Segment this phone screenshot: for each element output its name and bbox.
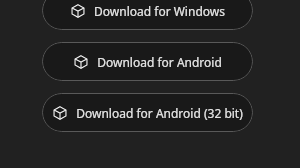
staticText: Download for Windows (94, 3, 225, 19)
button[interactable]: Download for Windows (42, 0, 253, 30)
button[interactable]: Download for Android (42, 42, 253, 81)
staticText: Download for Android (32 bit) (76, 105, 243, 121)
staticText: Download for Android (97, 54, 222, 70)
button[interactable]: Download for Android (32 bit) (42, 93, 253, 132)
